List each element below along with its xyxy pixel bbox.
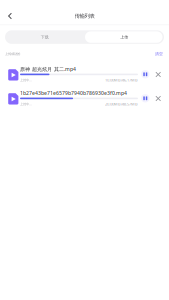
button[interactable]: Pause: [138, 67, 152, 81]
staticText: 上传: [120, 35, 128, 40]
staticText: 传输列表: [74, 13, 94, 19]
button[interactable]: Cancel: [152, 67, 164, 81]
button[interactable]: 清空: [143, 50, 163, 58]
button[interactable]: Cancel: [152, 91, 164, 105]
staticText: 上传中...: [20, 78, 32, 82]
button[interactable]: 下载: [5, 30, 84, 44]
staticText: 上传中...: [20, 102, 32, 106]
staticText: 下载: [41, 35, 49, 40]
button[interactable]: Pause: [138, 91, 152, 105]
button[interactable]: 上传: [84, 30, 164, 44]
staticText: 清空: [155, 51, 163, 56]
staticText: 1b27e43be71e6579b7940b786930e3f0.mp4: [20, 89, 127, 96]
staticText: 上传成功的: [5, 52, 20, 56]
staticText: 20.00MB/48.57MB: [105, 101, 138, 107]
staticText: 10.00MB/46.17MB: [105, 77, 138, 83]
button[interactable]: Back: [3, 8, 17, 24]
staticText: 原神 超光炫月 其二.mp4: [20, 65, 76, 72]
